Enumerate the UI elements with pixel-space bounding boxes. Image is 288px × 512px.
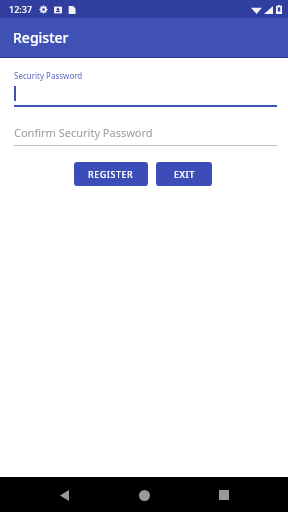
button[interactable]: REGISTER <box>74 162 148 186</box>
staticText: Confirm Security Password <box>14 125 153 140</box>
staticText: Register <box>13 28 69 47</box>
button[interactable]: Home <box>133 484 155 506</box>
button[interactable]: Confirm Security Password <box>0 121 288 150</box>
staticText: REGISTER <box>88 168 134 180</box>
button[interactable]: Security Password <box>0 67 288 110</box>
button[interactable]: EXIT <box>156 162 212 186</box>
button[interactable]: Back <box>53 484 75 506</box>
staticText: EXIT <box>174 168 195 180</box>
button[interactable]: Recent apps <box>213 484 235 506</box>
staticText: 12:37 <box>9 3 33 15</box>
staticText: Security Password <box>14 70 83 81</box>
